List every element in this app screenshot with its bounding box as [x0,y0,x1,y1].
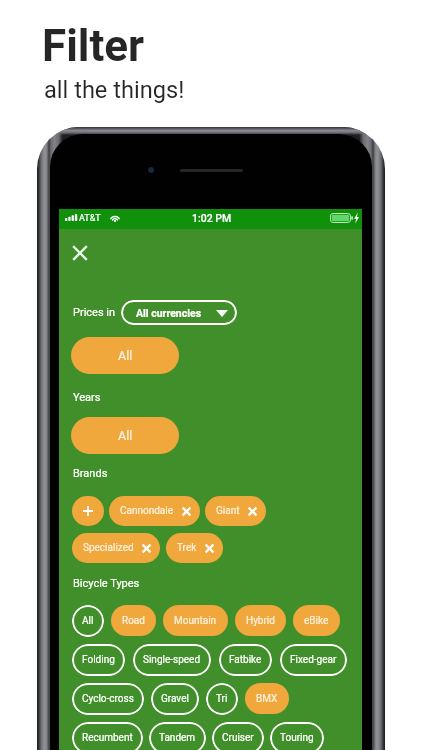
staticText: All [118,348,133,363]
button[interactable]: Fixed-gear [280,644,347,676]
staticText: Fixed-gear [290,654,337,666]
button[interactable]: All currencies [121,300,237,325]
button[interactable]: Mountain [163,605,228,636]
button[interactable]: Gravel [151,683,199,715]
staticText: Folding [82,654,115,666]
button[interactable]: All [72,605,104,637]
button[interactable]: Giant [205,496,266,526]
staticText: All currencies [136,307,202,319]
staticText: Tri [216,693,228,705]
staticText: Touring [280,732,314,744]
staticText: Hybrid [246,615,275,627]
staticText: Single-speed [143,654,201,666]
staticText: Filter [42,20,145,72]
button[interactable]: All [71,337,179,374]
button[interactable]: Recumbent [72,722,143,750]
button[interactable]: BMX [245,683,289,714]
staticText: BMX [256,693,278,705]
button[interactable]: Fatbike [219,644,272,676]
staticText: Cannondale [120,505,174,517]
button[interactable]: Folding [72,644,125,676]
staticText: Cruiser [222,732,254,744]
staticText: Trek [177,542,197,554]
button[interactable]: Specialized [72,533,160,563]
button[interactable]: Add brand [72,496,104,526]
staticText: Mountain [174,615,217,627]
staticText: Years [73,391,101,404]
button[interactable]: All [71,417,179,454]
staticText: AT&T [79,213,101,224]
staticText: Gravel [161,693,189,705]
button[interactable]: Touring [270,722,324,750]
button[interactable]: eBike [293,605,340,636]
button[interactable]: Hybrid [235,605,286,636]
staticText: Road [122,615,145,627]
button[interactable]: Tandem [149,722,206,750]
staticText: eBike [304,615,329,627]
staticText: All [118,428,133,443]
staticText: all the things! [44,76,185,104]
button[interactable]: Cruiser [212,722,264,750]
staticText: Prices in [73,306,116,319]
staticText: All [82,615,94,627]
staticText: Fatbike [229,654,262,666]
staticText: Cyclo-cross [82,693,134,705]
button[interactable]: Road [111,605,156,636]
button[interactable]: Tri [206,683,238,715]
button[interactable]: Trek [166,533,223,563]
staticText: Specialized [83,542,134,554]
button[interactable]: Close [63,236,97,270]
staticText: 1:02 PM [192,212,232,224]
staticText: Brands [73,467,108,480]
staticText: Giant [216,505,240,517]
button[interactable]: Cyclo-cross [72,683,144,715]
staticText: Recumbent [82,732,133,744]
button[interactable]: Single-speed [133,644,211,676]
staticText: Tandem [159,732,196,744]
staticText: Bicycle Types [73,577,140,590]
button[interactable]: Cannondale [109,496,200,526]
